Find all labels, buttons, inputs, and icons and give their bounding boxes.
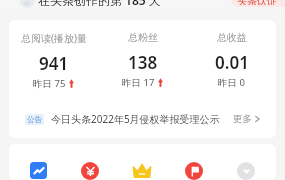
staticText: 0.01: [215, 51, 249, 74]
button[interactable]: 展开更多: [237, 162, 255, 180]
staticText: 昨日 75: [33, 77, 66, 90]
staticText: 941: [39, 52, 69, 75]
staticText: 在头条创作的第 185 天: [38, 0, 161, 6]
button[interactable]: 等级: [133, 162, 151, 180]
button[interactable]: 数据: [30, 162, 47, 179]
staticText: 总粉丝: [128, 31, 158, 44]
staticText: 昨日 17: [122, 76, 155, 89]
staticText: 今日头条2022年5月侵权举报受理公示: [51, 112, 220, 126]
button[interactable]: 举报: [185, 162, 203, 180]
staticText: 头条认证: [237, 0, 277, 5]
staticText: 总收益: [217, 31, 247, 44]
staticText: 公告: [27, 115, 42, 124]
button[interactable]: 公告: [25, 108, 260, 130]
button[interactable]: 收益: [81, 162, 99, 180]
staticText: 总阅读(播放)量: [21, 31, 87, 45]
staticText: 昨日 0: [218, 76, 245, 89]
staticText: 138: [128, 51, 158, 74]
button[interactable]: 头像: [20, 0, 34, 8]
staticText: 更多: [233, 113, 252, 125]
button[interactable]: 头条认证: [237, 0, 277, 5]
